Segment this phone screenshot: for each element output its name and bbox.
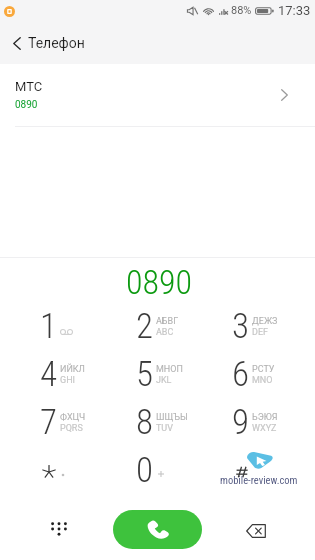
staticText: DEF xyxy=(252,327,268,338)
button[interactable] xyxy=(206,446,302,494)
button[interactable]: 6 xyxy=(206,350,302,398)
staticText: 4 xyxy=(40,354,56,395)
button[interactable] xyxy=(13,446,110,494)
staticText: ABC xyxy=(156,327,174,338)
staticText: mobile-review.com xyxy=(220,474,298,486)
staticText: 8 xyxy=(136,402,152,443)
button[interactable]: 8 xyxy=(110,398,206,446)
button[interactable]: Call xyxy=(113,510,202,549)
button[interactable]: 3 xyxy=(206,302,302,350)
staticText: 17:33 xyxy=(278,3,311,18)
button[interactable]: 7 xyxy=(13,398,110,446)
button[interactable]: 4 xyxy=(13,350,110,398)
button[interactable]: Телефон xyxy=(0,22,99,64)
staticText: Телефон xyxy=(28,35,85,51)
staticText: MNO xyxy=(252,375,273,386)
staticText: 0890 xyxy=(15,99,38,111)
staticText: 0 xyxy=(136,450,152,491)
button[interactable]: 1 xyxy=(13,302,110,350)
staticText: 9 xyxy=(232,402,248,443)
staticText: ШЩЪЫ xyxy=(156,412,188,423)
staticText: АБВГ xyxy=(156,316,179,327)
staticText: WXYZ xyxy=(252,423,277,434)
staticText: PQRS xyxy=(60,423,83,434)
staticText: ИЙКЛ xyxy=(60,364,85,375)
staticText: 5 xyxy=(136,354,152,395)
staticText: ДЕЖЗ xyxy=(252,316,278,327)
staticText: GHI xyxy=(60,375,75,386)
staticText: 3 xyxy=(232,306,248,347)
button[interactable]: МТС xyxy=(0,64,315,126)
staticText: 1 xyxy=(40,306,56,347)
staticText: 7 xyxy=(40,402,56,443)
staticText: 0890 xyxy=(126,262,193,302)
staticText: РСТУ xyxy=(252,364,275,375)
button[interactable]: 5 xyxy=(110,350,206,398)
staticText: 6 xyxy=(232,354,248,395)
button[interactable]: 2 xyxy=(110,302,206,350)
button[interactable]: 9 xyxy=(206,398,302,446)
staticText: ФХЦЧ xyxy=(60,412,86,423)
button[interactable]: Show keypad xyxy=(42,512,76,546)
staticText: 88% xyxy=(231,4,252,17)
staticText: TUV xyxy=(156,423,173,434)
staticText: МНОП xyxy=(156,364,183,375)
staticText: JKL xyxy=(156,375,172,386)
staticText: ЬЭЮЯ xyxy=(252,412,278,423)
button[interactable]: 0 xyxy=(110,446,206,494)
staticText: 2 xyxy=(136,306,152,347)
button[interactable]: Backspace xyxy=(239,514,273,548)
staticText: МТС xyxy=(15,79,43,94)
